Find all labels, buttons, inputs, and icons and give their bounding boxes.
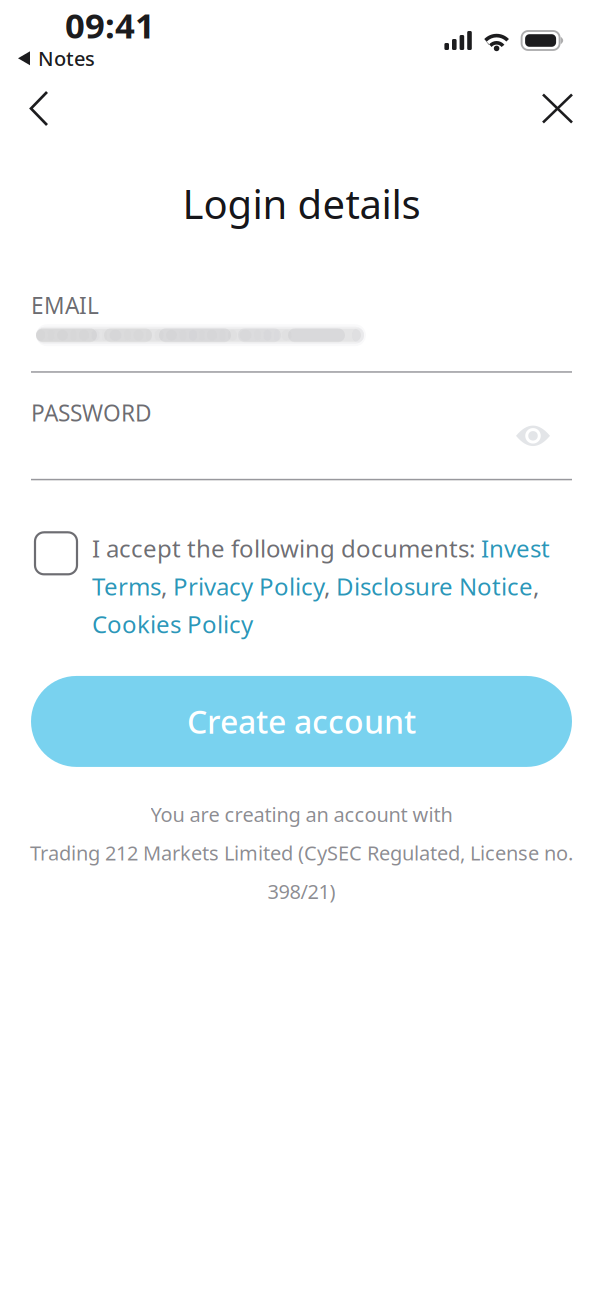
staticText: You are creating an account with: [150, 801, 452, 827]
staticText: Login details: [182, 177, 420, 230]
staticText: Trading 212 Markets Limited (CySEC Regul…: [30, 839, 573, 866]
button[interactable]: Back to Notes: [0, 38, 95, 72]
staticText: Create account: [187, 700, 416, 743]
staticText: I accept the following documents: Invest…: [92, 532, 550, 640]
button[interactable]: I accept the following documents: Invest…: [35, 532, 575, 640]
staticText: PASSWORD: [31, 398, 152, 428]
staticText: 09:41: [65, 2, 155, 48]
button[interactable]: Back: [0, 80, 73, 137]
staticText: Notes: [38, 45, 95, 72]
button[interactable]: Close: [517, 80, 603, 137]
staticText: 398/21): [267, 878, 335, 905]
button[interactable]: Show password: [516, 421, 572, 451]
button[interactable]: Create account: [31, 676, 572, 767]
staticText: EMAIL: [31, 290, 99, 320]
